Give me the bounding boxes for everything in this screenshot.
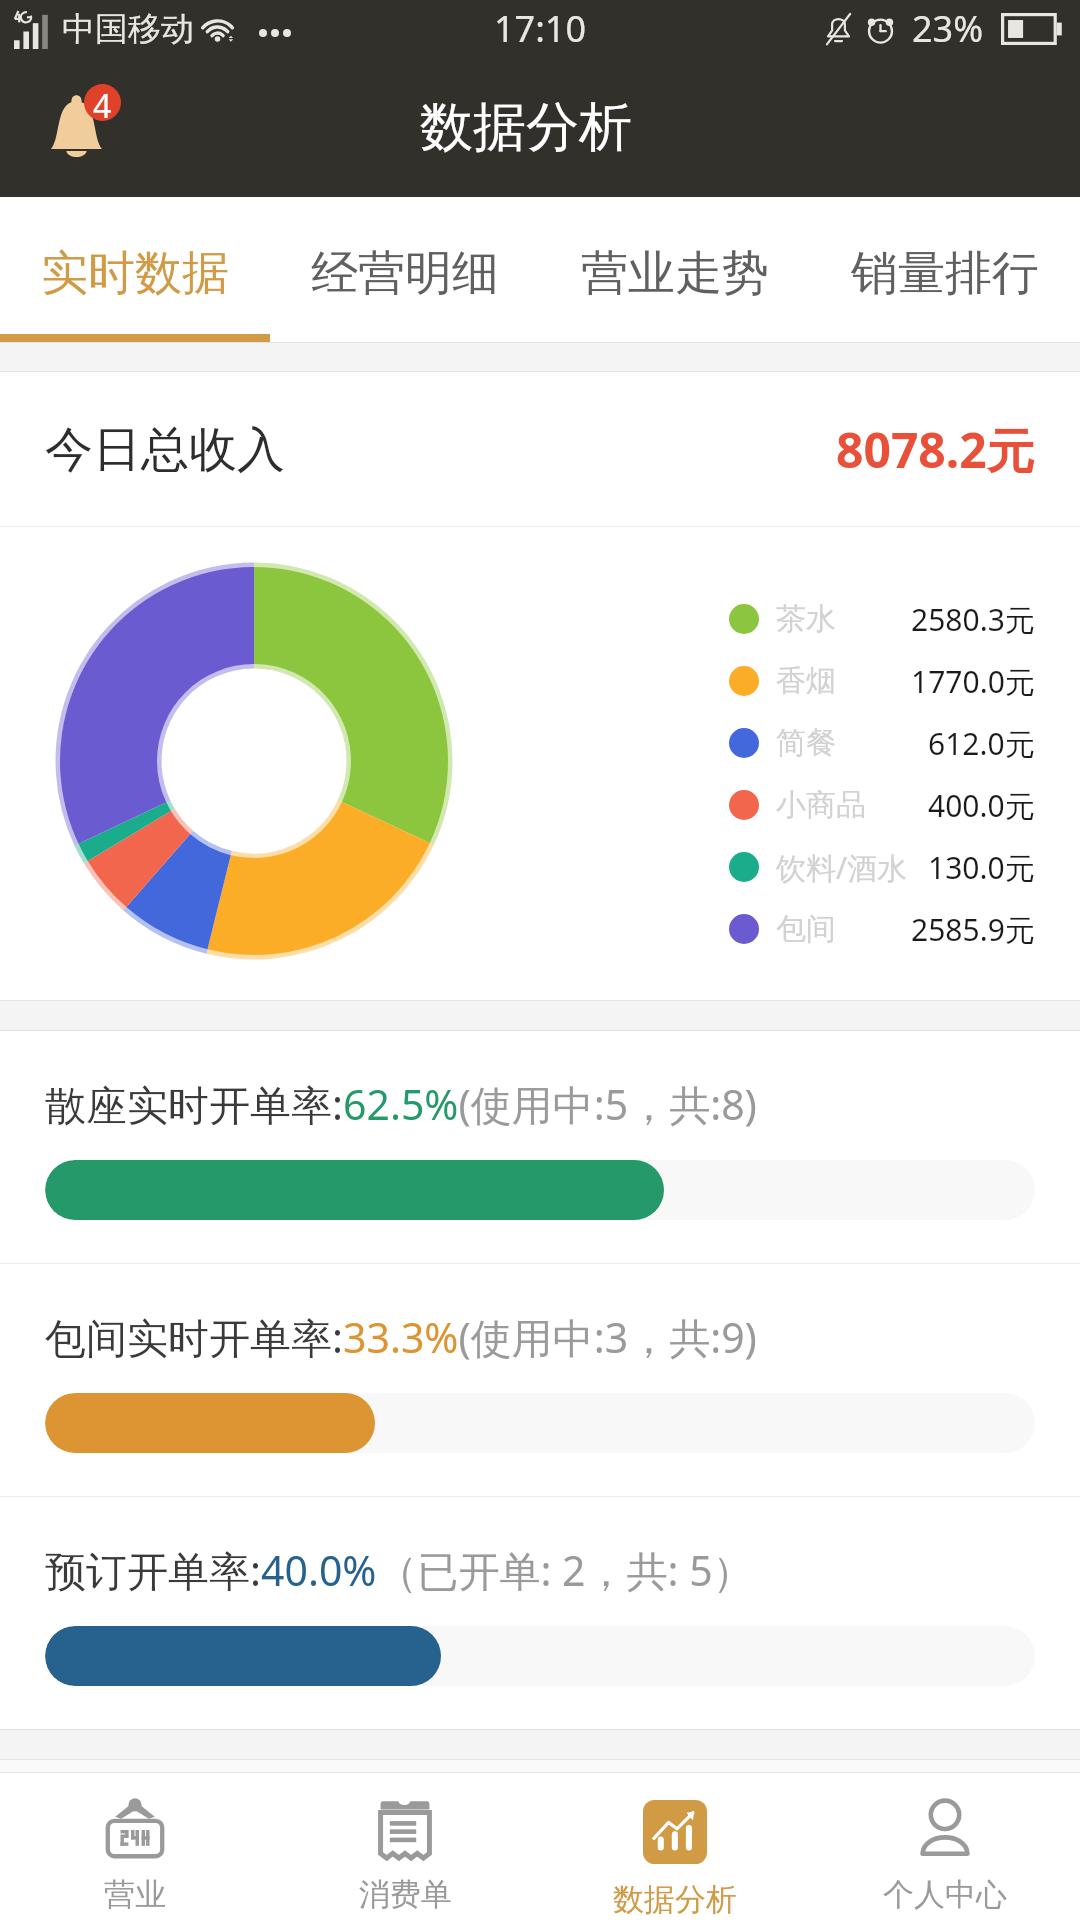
staticText: 实时数据	[41, 244, 229, 303]
staticText: 茶水	[776, 600, 836, 638]
staticText: 饮料/酒水	[776, 847, 908, 888]
staticText: 营业走势	[581, 244, 769, 303]
staticText: 4	[93, 84, 112, 121]
button[interactable]: 个人中心	[810, 1773, 1080, 1920]
staticText: 预订开单率:40.0%（已开单: 2，共: 5）	[45, 1542, 754, 1598]
staticText: 个人中心	[883, 1875, 1007, 1914]
staticText: 23%	[912, 4, 984, 53]
staticText: 小商品	[776, 786, 866, 824]
staticText: 包间	[776, 910, 836, 948]
staticText: 散座实时开单率:62.5%(使用中:5，共:8)	[45, 1076, 757, 1132]
button[interactable]: 消费单	[270, 1773, 540, 1920]
button[interactable]: 营业走势	[540, 197, 810, 334]
staticText: 8078.2元	[836, 417, 1035, 483]
staticText: 营业	[104, 1875, 166, 1914]
staticText: 中国移动	[62, 8, 194, 50]
button[interactable]: 包间实时开单率:33.3%(使用中:3，共:9)	[0, 1264, 1080, 1496]
staticText: 消费单	[359, 1875, 452, 1914]
staticText: 香烟	[776, 662, 836, 700]
staticText: 经营明细	[311, 244, 499, 303]
button[interactable]: 散座实时开单率:62.5%(使用中:5，共:8)	[0, 1031, 1080, 1263]
staticText: 17:10	[494, 4, 587, 53]
staticText: 简餐	[776, 724, 836, 762]
button[interactable]: 预订开单率:40.0%（已开单: 2，共: 5）	[0, 1497, 1080, 1729]
staticText: 包间实时开单率:33.3%(使用中:3，共:9)	[45, 1309, 757, 1365]
staticText: 2580.3元	[911, 599, 1035, 640]
button[interactable]: 营业	[0, 1773, 270, 1920]
staticText: 612.0元	[928, 723, 1035, 764]
button[interactable]: 数据分析	[540, 1773, 810, 1920]
button[interactable]: 经营明细	[270, 197, 540, 334]
staticText: 400.0元	[928, 785, 1035, 826]
staticText: 销量排行	[851, 244, 1039, 303]
staticText: 今日总收入	[45, 420, 285, 480]
staticText: 130.0元	[928, 847, 1035, 888]
staticText: 2585.9元	[911, 909, 1035, 950]
button[interactable]: Notifications	[36, 77, 136, 167]
button[interactable]: 实时数据	[0, 197, 270, 334]
staticText: 数据分析	[420, 94, 632, 161]
button[interactable]: 销量排行	[810, 197, 1080, 334]
staticText: 1770.0元	[911, 661, 1035, 702]
staticText: 数据分析	[613, 1880, 737, 1919]
